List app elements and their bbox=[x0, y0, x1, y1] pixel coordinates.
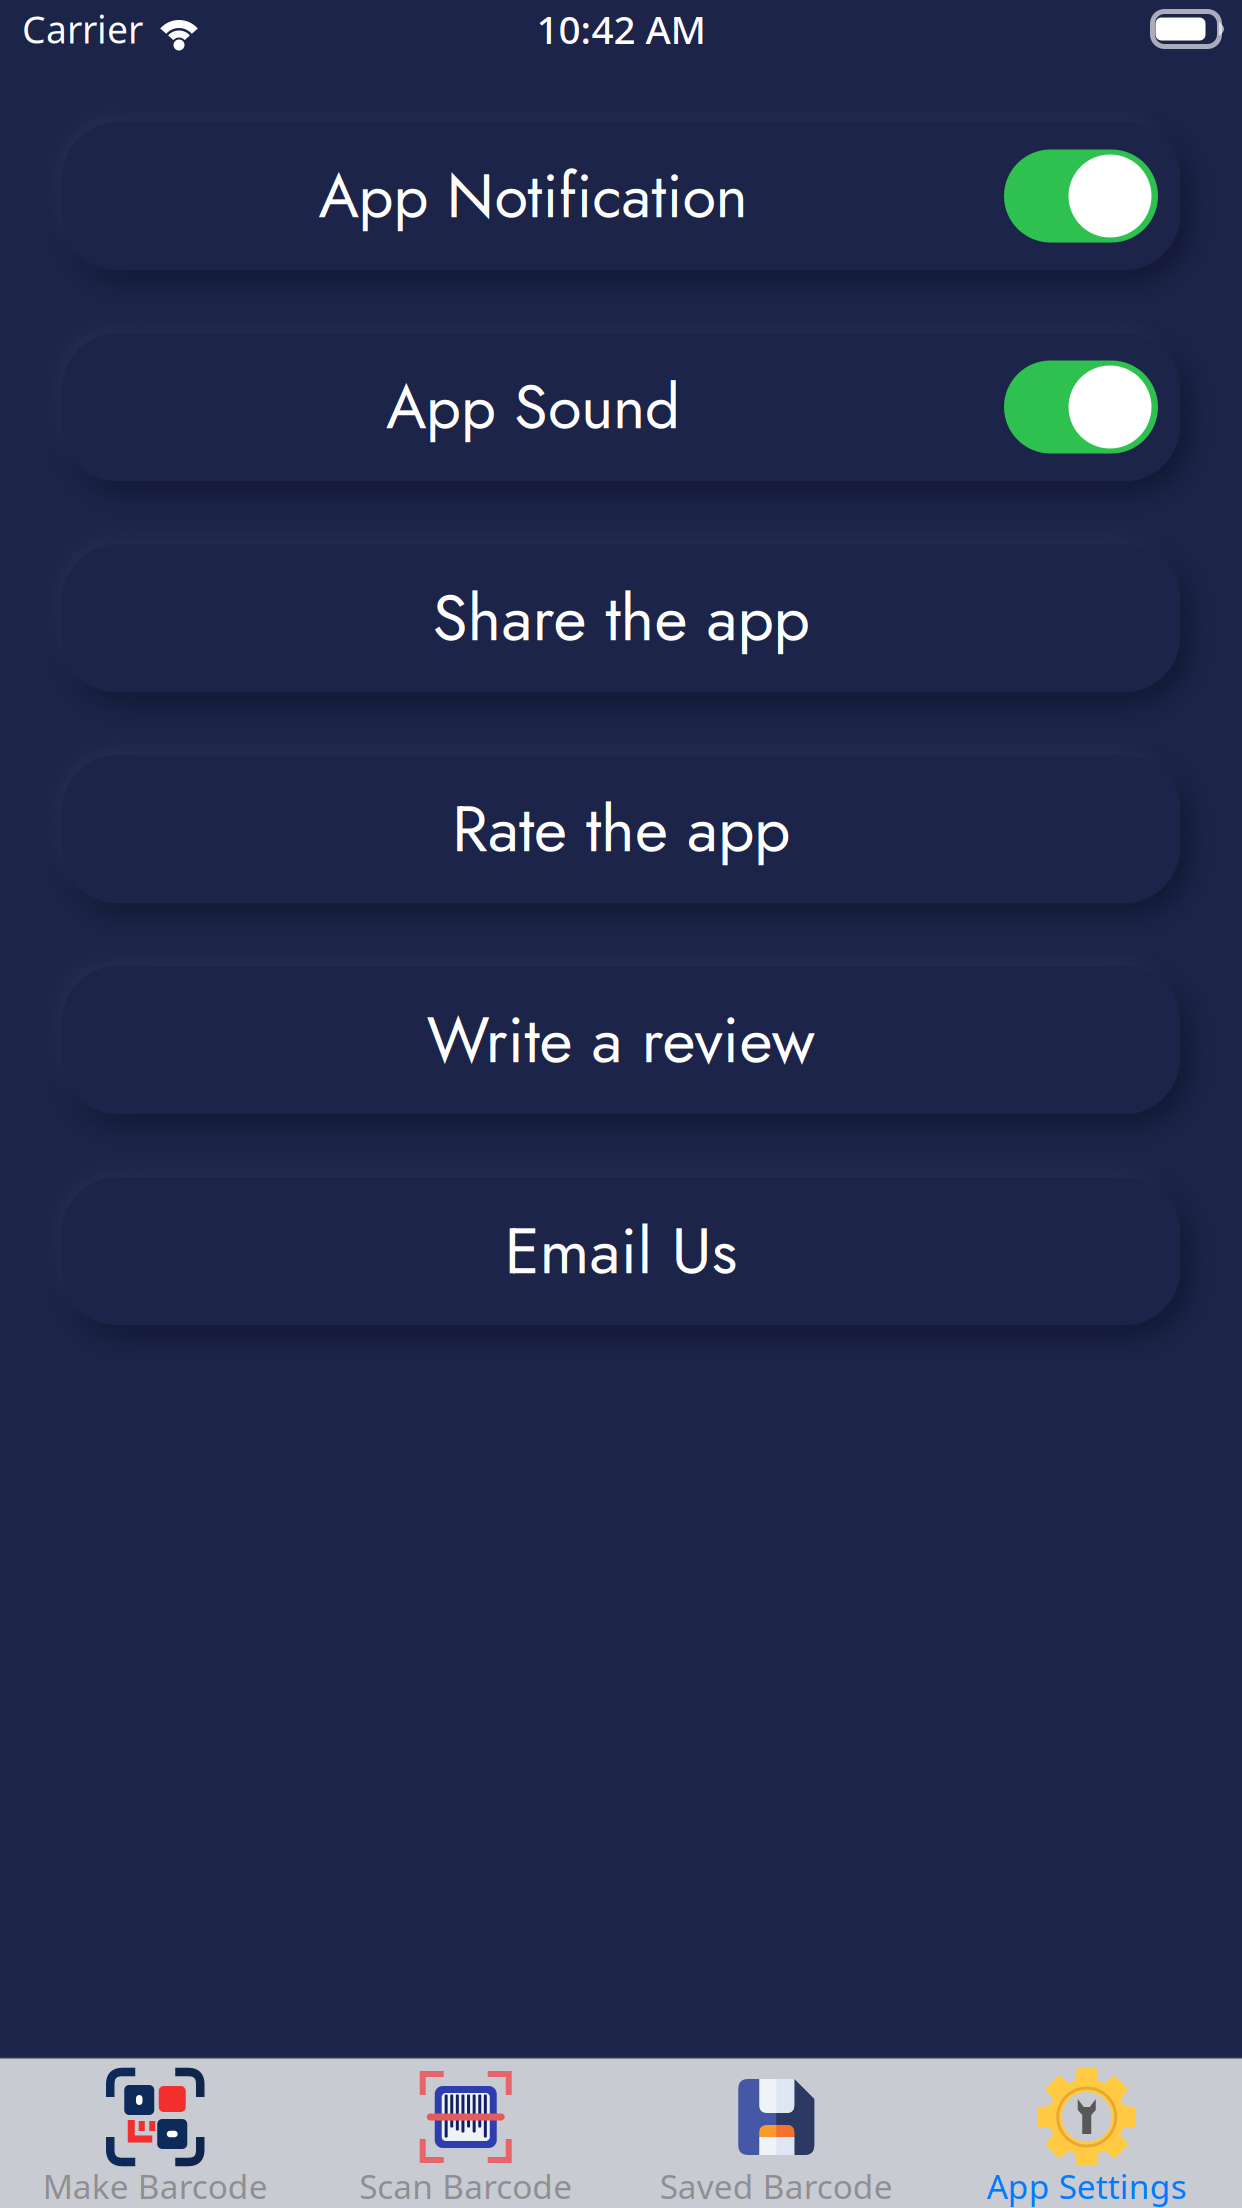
button[interactable]: App Sound bbox=[62, 333, 1180, 481]
button[interactable]: Rate the app bbox=[62, 755, 1180, 903]
button[interactable]: Write a review bbox=[62, 966, 1180, 1114]
staticText: App Notification bbox=[318, 152, 747, 240]
staticText: App Settings bbox=[987, 2164, 1187, 2208]
staticText: Email Us bbox=[504, 1205, 737, 1297]
staticText: 10:42 AM bbox=[536, 3, 705, 55]
button[interactable]: App Notification bbox=[62, 122, 1180, 270]
button[interactable]: Share the app bbox=[62, 544, 1180, 692]
button[interactable]: Saved Barcode bbox=[621, 2057, 931, 2208]
button[interactable]: App Sound, on bbox=[1004, 360, 1180, 453]
staticText: Write a review bbox=[426, 994, 815, 1086]
button[interactable]: Make Barcode bbox=[0, 2057, 310, 2208]
staticText: Saved Barcode bbox=[660, 2164, 893, 2208]
button[interactable]: Scan Barcode bbox=[310, 2057, 621, 2208]
staticText: Make Barcode bbox=[43, 2164, 268, 2208]
staticText: Scan Barcode bbox=[359, 2164, 572, 2208]
button[interactable]: App Settings bbox=[931, 2057, 1242, 2208]
staticText: Carrier bbox=[22, 4, 143, 54]
staticText: Share the app bbox=[432, 572, 809, 664]
staticText: App Sound bbox=[386, 363, 680, 451]
button[interactable]: App Notification, on bbox=[1004, 149, 1180, 242]
staticText: Rate the app bbox=[452, 783, 790, 875]
button[interactable]: Email Us bbox=[62, 1177, 1180, 1325]
